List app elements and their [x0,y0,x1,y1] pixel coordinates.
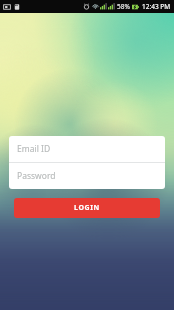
staticText: LOGIN [74,203,100,213]
staticText: Email ID [17,143,51,155]
button[interactable]: Password [9,163,165,189]
staticText: 12:43 PM [142,2,171,11]
staticText: 58% [117,2,130,11]
button[interactable]: Email ID [9,136,165,162]
button[interactable]: LOGIN [14,198,160,218]
staticText: Password [17,170,56,182]
